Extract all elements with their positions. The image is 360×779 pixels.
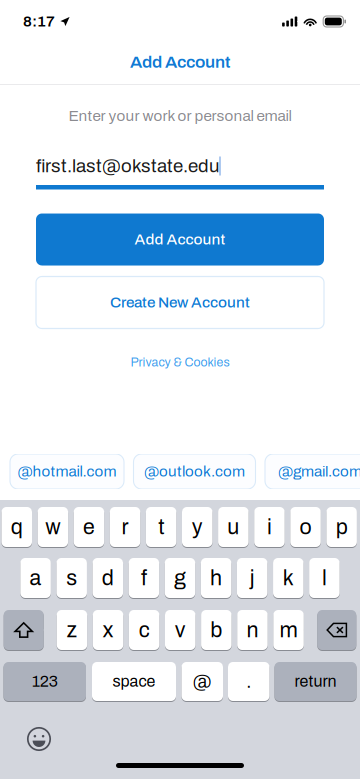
- button[interactable]: y: [182, 507, 212, 547]
- button[interactable]: l: [309, 558, 340, 598]
- staticText: Create New Account: [110, 294, 250, 311]
- button[interactable]: 123: [3, 662, 86, 701]
- staticText: e: [83, 515, 95, 539]
- staticText: Enter your work or personal email: [68, 108, 291, 124]
- button[interactable]: Add Account: [36, 213, 324, 265]
- staticText: g: [174, 566, 186, 590]
- staticText: o: [300, 515, 312, 539]
- button[interactable]: u: [218, 507, 249, 547]
- button[interactable]: r: [110, 507, 140, 547]
- staticText: return: [294, 673, 336, 690]
- button[interactable]: m: [273, 610, 304, 650]
- button[interactable]: e: [74, 507, 104, 547]
- button[interactable]: j: [237, 558, 267, 598]
- staticText: t: [158, 515, 164, 539]
- button[interactable]: k: [273, 558, 303, 598]
- staticText: r: [122, 515, 129, 539]
- button[interactable]: f: [129, 558, 159, 598]
- staticText: d: [102, 566, 114, 590]
- staticText: b: [210, 618, 222, 642]
- button[interactable]: t: [146, 507, 176, 547]
- button[interactable]: space: [92, 662, 176, 701]
- button[interactable]: Emoji keyboard: [27, 727, 53, 753]
- button[interactable]: @outlook.com: [133, 454, 255, 489]
- staticText: @: [193, 671, 212, 692]
- button[interactable]: @gmail.com: [265, 454, 360, 489]
- button[interactable]: z: [57, 610, 87, 650]
- button[interactable]: Delete: [317, 610, 356, 650]
- staticText: Privacy & Cookies: [130, 356, 229, 369]
- staticText: z: [66, 618, 77, 642]
- button[interactable]: Shift: [4, 610, 44, 650]
- staticText: q: [11, 515, 23, 539]
- staticText: .: [246, 671, 251, 692]
- staticText: Add Account: [130, 53, 230, 71]
- button[interactable]: Privacy & Cookies: [122, 350, 237, 374]
- staticText: first.last@okstate.edu: [36, 156, 219, 176]
- button[interactable]: x: [93, 610, 123, 650]
- staticText: @hotmail.com: [17, 463, 116, 480]
- button[interactable]: @: [181, 662, 223, 701]
- staticText: p: [336, 515, 348, 539]
- staticText: s: [66, 566, 77, 590]
- button[interactable]: @hotmail.com: [10, 454, 124, 489]
- button[interactable]: Add Account: [0, 40, 360, 84]
- staticText: a: [30, 566, 42, 590]
- button[interactable]: n: [237, 610, 268, 650]
- button[interactable]: q: [1, 507, 32, 547]
- staticText: i: [267, 515, 272, 539]
- button[interactable]: p: [326, 507, 357, 547]
- button[interactable]: s: [56, 558, 87, 598]
- button[interactable]: d: [92, 558, 123, 598]
- staticText: h: [210, 566, 222, 590]
- staticText: @outlook.com: [144, 463, 245, 480]
- staticText: w: [45, 515, 60, 539]
- staticText: Add Account: [134, 231, 225, 248]
- button[interactable]: a: [20, 558, 51, 598]
- staticText: 123: [32, 673, 58, 690]
- button[interactable]: h: [201, 558, 231, 598]
- button[interactable]: o: [290, 507, 321, 547]
- staticText: j: [250, 566, 255, 590]
- staticText: space: [112, 673, 155, 690]
- staticText: 8:17: [23, 13, 55, 30]
- staticText: n: [246, 618, 258, 642]
- staticText: x: [103, 618, 114, 642]
- button[interactable]: b: [201, 610, 232, 650]
- button[interactable]: i: [254, 507, 285, 547]
- staticText: k: [283, 566, 294, 590]
- button[interactable]: c: [129, 610, 159, 650]
- button[interactable]: return: [274, 662, 356, 701]
- button[interactable]: Create New Account: [36, 276, 324, 328]
- staticText: @gmail.com: [278, 463, 360, 480]
- staticText: c: [139, 618, 150, 642]
- staticText: f: [141, 566, 147, 590]
- button[interactable]: .: [228, 662, 269, 701]
- staticText: l: [322, 566, 327, 590]
- button[interactable]: v: [165, 610, 195, 650]
- staticText: m: [280, 618, 298, 642]
- button[interactable]: w: [38, 507, 68, 547]
- button[interactable]: g: [165, 558, 195, 598]
- staticText: v: [175, 618, 186, 642]
- staticText: u: [227, 515, 239, 539]
- staticText: y: [192, 515, 203, 539]
